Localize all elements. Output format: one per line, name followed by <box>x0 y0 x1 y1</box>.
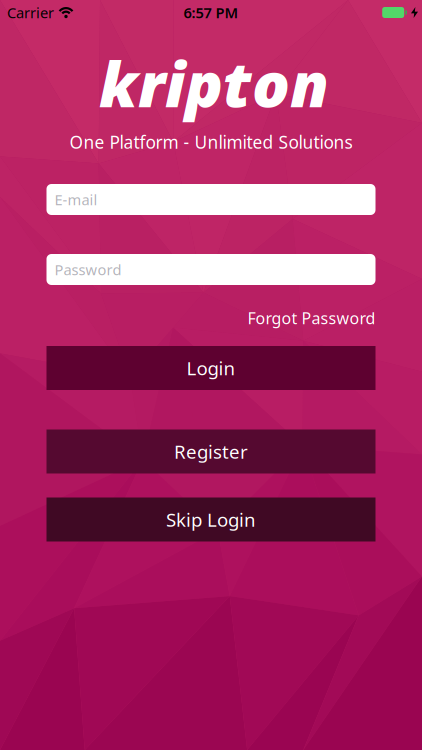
staticText: Forgot Password <box>247 307 375 329</box>
staticText: Login <box>186 356 235 380</box>
button[interactable]: Login <box>46 346 375 390</box>
staticText: Skip Login <box>166 507 256 532</box>
staticText: One Platform - Unlimited Solutions <box>69 130 352 153</box>
staticText: kripton <box>99 41 329 125</box>
staticText: E-mail <box>54 190 97 209</box>
button[interactable]: Skip Login <box>46 497 375 541</box>
button[interactable]: Register <box>46 429 375 473</box>
button[interactable]: Forgot Password <box>247 307 375 329</box>
staticText: 6:57 PM <box>183 3 238 22</box>
button[interactable]: E-mail <box>46 184 375 215</box>
staticText: Register <box>174 439 248 464</box>
staticText: Password <box>54 260 121 279</box>
button[interactable]: Password <box>46 254 375 285</box>
staticText: Carrier <box>7 3 54 22</box>
